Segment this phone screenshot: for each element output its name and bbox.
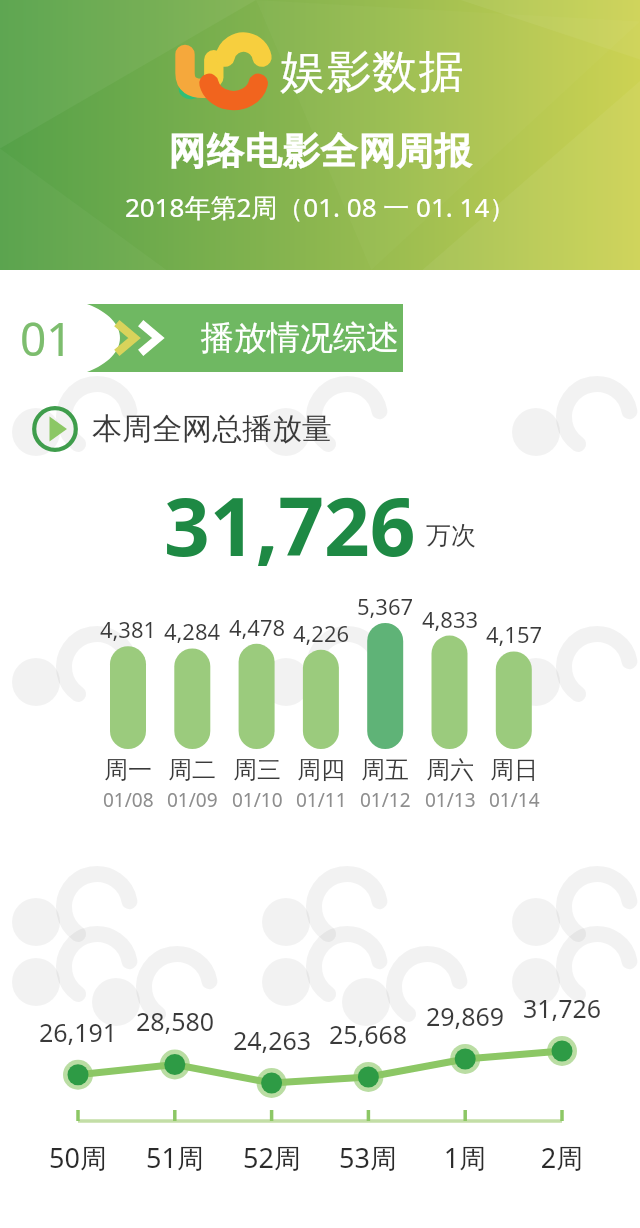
staticText: 01 <box>20 307 73 370</box>
staticText: 31,726 <box>507 991 617 1025</box>
staticText: 播放情况综述 <box>201 317 399 359</box>
staticText: 周三 <box>233 755 281 785</box>
staticText: 4,284 <box>152 616 232 646</box>
staticText: 本周全网总播放量 <box>92 410 332 448</box>
staticText: 01/14 <box>489 787 540 813</box>
staticText: 24,263 <box>217 1023 327 1057</box>
staticText: 周二 <box>168 755 216 785</box>
staticText: 4,478 <box>217 612 297 642</box>
button[interactable]: Play <box>0 406 640 452</box>
staticText: 01/11 <box>296 787 347 813</box>
staticText: 51周 <box>120 1139 230 1176</box>
staticText: 25,668 <box>313 1017 423 1051</box>
staticText: 52周 <box>217 1139 327 1176</box>
other: Play <box>32 406 78 452</box>
staticText: 2018年第2周（01. 08 一 01. 14） <box>125 189 516 225</box>
staticText: 娱影数据 <box>280 44 464 101</box>
staticText: 4,833 <box>410 604 490 634</box>
staticText: 4,381 <box>88 614 168 644</box>
staticText: 01/10 <box>232 787 283 813</box>
staticText: 50周 <box>23 1139 133 1176</box>
staticText: 28,580 <box>120 1004 230 1038</box>
staticText: 31,726 <box>164 470 416 579</box>
staticText: 29,869 <box>410 999 520 1033</box>
staticText: 53周 <box>313 1139 423 1176</box>
staticText: 周四 <box>297 755 345 785</box>
staticText: 01/09 <box>167 787 218 813</box>
button[interactable]: 播放情况综述 <box>85 304 403 372</box>
staticText: 01/12 <box>360 787 411 813</box>
staticText: 4,157 <box>474 619 554 649</box>
staticText: 周六 <box>426 755 474 785</box>
staticText: 4,226 <box>281 618 361 648</box>
staticText: 5,367 <box>345 591 425 621</box>
staticText: 2周 <box>507 1139 617 1176</box>
staticText: 01/13 <box>425 787 476 813</box>
staticText: 01/08 <box>103 787 154 813</box>
staticText: 网络电影全网周报 <box>168 128 472 175</box>
staticText: 周五 <box>361 755 409 785</box>
staticText: 周一 <box>104 755 152 785</box>
staticText: 1周 <box>410 1139 520 1176</box>
staticText: 万次 <box>426 520 476 551</box>
staticText: 26,191 <box>23 1015 133 1049</box>
staticText: 周日 <box>490 755 538 785</box>
